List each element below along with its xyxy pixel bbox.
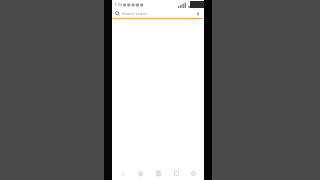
button[interactable]: Tabs [169,166,183,180]
staticText: 1:34 [114,2,122,7]
button[interactable]: Bookmarks [151,166,165,180]
button[interactable]: More options [195,11,201,17]
button[interactable]: Settings [186,166,200,180]
staticText: Search Loans [122,11,195,16]
button[interactable]: Back [116,166,130,180]
button[interactable]: Search Loans [112,9,204,18]
button[interactable]: Home [133,166,147,180]
